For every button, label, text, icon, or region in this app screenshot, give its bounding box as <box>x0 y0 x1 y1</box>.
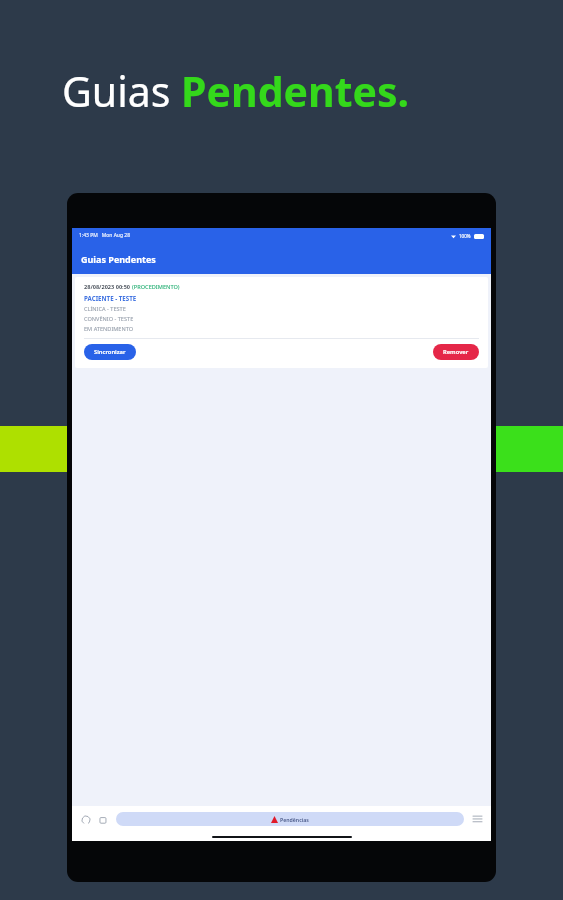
button[interactable]: Tabs <box>96 813 109 826</box>
staticText: CONVÊNIO - TESTE <box>84 315 134 323</box>
staticText: Remover <box>443 348 469 356</box>
button[interactable]: Remover <box>433 344 479 360</box>
staticText: (PROCEDIMENTO) <box>132 283 180 291</box>
button[interactable]: 28/08/2023 00:50 <box>75 277 488 368</box>
staticText: 1:43 PM Mon Aug 28 <box>79 232 131 239</box>
button[interactable]: Menu <box>471 813 484 826</box>
button[interactable]: Sincronizar <box>84 344 136 360</box>
staticText: 100% <box>459 233 471 239</box>
button[interactable]: Back <box>79 813 92 826</box>
staticText: 28/08/2023 00:50 <box>84 283 132 291</box>
staticText: Pendências <box>280 816 309 823</box>
staticText: CLÍNICA - TESTE <box>84 305 126 313</box>
button[interactable]: Pendências <box>116 812 464 826</box>
staticText: Sincronizar <box>94 348 126 356</box>
staticText: PACIENTE - TESTE <box>84 294 137 302</box>
staticText: EM ATENDIMENTO <box>84 325 134 333</box>
staticText: Guias Pendentes <box>81 253 156 265</box>
staticText: Guias Pendentes. <box>62 63 410 119</box>
